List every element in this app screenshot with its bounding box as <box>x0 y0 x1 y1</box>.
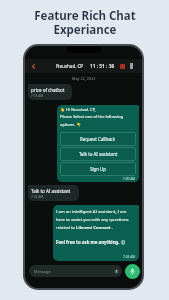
button[interactable]: Message <box>29 265 122 277</box>
staticText: Noushad. CP <box>56 63 84 69</box>
staticText: Talk to AI assistant <box>79 151 118 157</box>
button[interactable]: Request Callback <box>60 132 136 146</box>
staticText: Feature Rich Chat Experiance <box>34 8 136 37</box>
staticText: 7:18 AM <box>31 94 44 98</box>
staticText: Request Callback <box>80 136 116 142</box>
button[interactable]: Back <box>29 62 38 71</box>
staticText: I am an intelligent AI assistant, I am h… <box>56 209 136 230</box>
staticText: price of chatbot <box>31 87 65 93</box>
staticText: 7:24 AM <box>123 255 136 259</box>
staticText: 👋 Hi Noushad. CP, Please Select one of t… <box>60 107 136 127</box>
staticText: Message <box>34 269 51 274</box>
staticText: May 22, 2023 <box>72 76 96 81</box>
button[interactable]: End call <box>120 64 125 69</box>
button[interactable]: Talk to AI assistant <box>60 147 136 161</box>
staticText: Talk to AI assistant <box>31 188 71 194</box>
button[interactable]: Record voice message <box>125 264 140 279</box>
staticText: Feel free to ask me anything. 😊 <box>56 239 126 245</box>
staticText: 7:20 AM <box>123 177 136 181</box>
staticText: 7:24 AM <box>31 195 44 199</box>
staticText: 11 : 51 : 36 <box>90 63 115 70</box>
button[interactable]: Sign Up <box>60 162 136 176</box>
staticText: Sign Up <box>90 166 107 172</box>
